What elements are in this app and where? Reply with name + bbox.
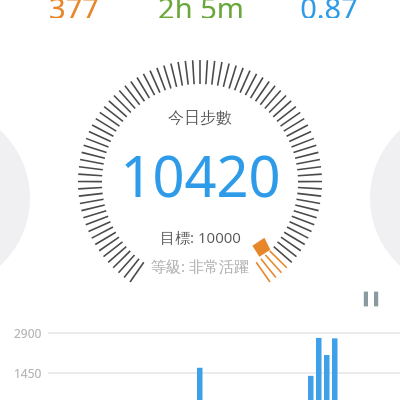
staticText: 10420	[120, 137, 281, 199]
button[interactable]: 2h 5m	[138, 0, 264, 18]
button[interactable]: 377	[14, 0, 134, 18]
button[interactable]	[0, 0, 400, 400]
staticText: 1450	[14, 365, 42, 381]
staticText: 今日步數	[168, 108, 232, 128]
staticText: 等級: 非常活躍	[151, 256, 249, 276]
button[interactable]: Pause	[354, 282, 388, 316]
button[interactable]	[0, 0, 400, 400]
staticText: 2900	[14, 325, 42, 341]
staticText: 377	[49, 0, 99, 18]
staticText: 目標: 10000	[160, 227, 241, 247]
staticText: 0.87	[300, 0, 358, 18]
button[interactable]: 0.87	[272, 0, 386, 18]
staticText: 2h 5m	[158, 0, 244, 18]
